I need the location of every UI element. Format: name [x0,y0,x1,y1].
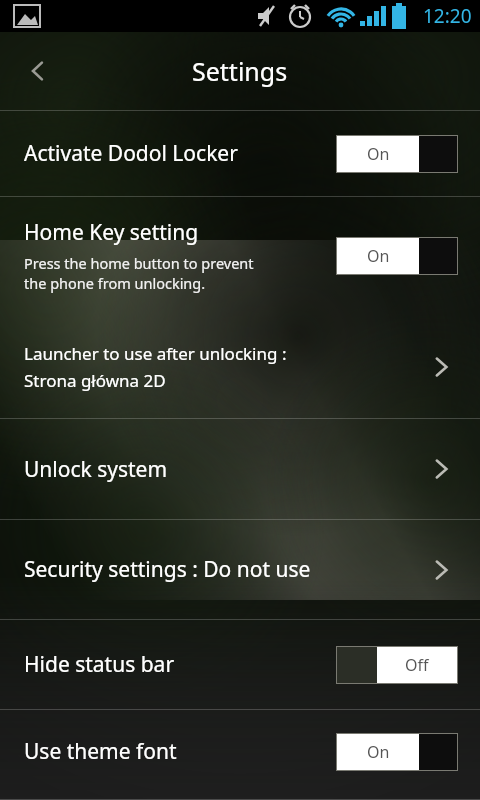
staticText: On [367,143,390,165]
other: Open [426,454,456,484]
button[interactable]: Off [337,647,457,683]
button[interactable]: On [337,136,457,172]
other: Open [426,555,456,585]
button[interactable]: Hide status bar [0,620,480,709]
staticText: Press the home button to prevent the pho… [24,253,254,294]
other: Open [426,352,456,382]
staticText: On [367,245,390,267]
staticText: Settings [192,54,288,88]
staticText: Security settings : Do not use [24,555,426,584]
button[interactable]: On [337,734,457,770]
staticText: Unlock system [24,455,426,484]
staticText: Strona główna 2D [24,369,166,392]
button[interactable]: On [337,238,457,274]
staticText: 12:20 [423,3,472,29]
button[interactable]: Use theme font [0,710,480,793]
button[interactable]: Activate Dodol Locker [0,111,480,196]
staticText: Launcher to use after unlocking : [24,342,287,365]
staticText: Home Key setting [24,218,199,247]
staticText: Activate Dodol Locker [24,139,336,168]
button[interactable]: Back [10,43,66,99]
staticText: Off [405,654,429,676]
staticText: Hide status bar [24,650,336,679]
button[interactable]: Unlock system [0,419,480,519]
staticText: Use theme font [24,737,336,766]
button[interactable]: Security settings : Do not use [0,520,480,619]
button[interactable]: Launcher to use after unlocking : [0,315,480,418]
staticText: On [367,741,390,763]
